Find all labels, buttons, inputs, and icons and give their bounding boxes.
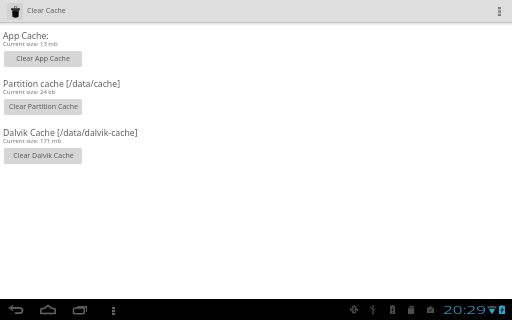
staticText: Clear Cache: [27, 6, 66, 16]
staticText: Clear Dalvik Cache: [13, 151, 74, 161]
staticText: Clear Partition Cache: [9, 102, 78, 112]
button[interactable]: More options: [488, 0, 510, 22]
button[interactable]: Recent apps: [65, 299, 95, 320]
staticText: Current size: 13 mb: [3, 40, 58, 48]
staticText: Current size: 171 mb: [3, 137, 62, 145]
staticText: Dalvik Cache [/data/dalvik-cache]: [3, 127, 138, 139]
staticText: Clear App Cache: [16, 54, 70, 64]
button[interactable]: Clear Dalvik Cache: [4, 148, 82, 164]
button[interactable]: Clear Cache app icon: [7, 3, 23, 20]
staticText: 20:29: [443, 303, 486, 316]
button[interactable]: Clear App Cache: [4, 51, 82, 67]
button[interactable]: Back: [2, 299, 30, 320]
button[interactable]: Clear Partition Cache: [4, 99, 82, 115]
staticText: App Cache:: [3, 30, 49, 42]
button[interactable]: Home: [32, 299, 63, 320]
staticText: Partition cache [/data/cache]: [3, 78, 120, 90]
staticText: Current size: 24 kb: [3, 88, 56, 96]
button[interactable]: Menu: [103, 299, 123, 320]
